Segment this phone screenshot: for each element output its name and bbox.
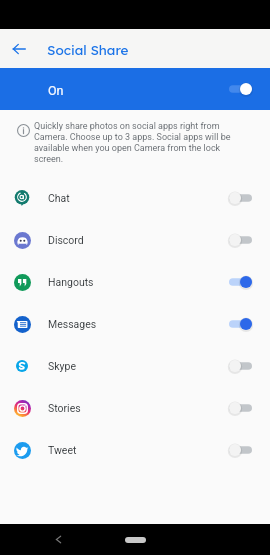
staticText: Hangouts bbox=[48, 276, 94, 288]
button[interactable]: Hangouts bbox=[0, 261, 270, 303]
button[interactable]: Messages bbox=[0, 303, 270, 345]
button[interactable]: Home bbox=[125, 537, 146, 543]
button[interactable]: Toggle bbox=[229, 82, 252, 96]
button[interactable]: On bbox=[0, 68, 270, 110]
staticText: Messages bbox=[48, 318, 97, 330]
button[interactable]: Stories bbox=[0, 387, 270, 429]
staticText: Quickly share photos on social apps righ… bbox=[34, 121, 232, 165]
staticText: Stories bbox=[48, 402, 81, 414]
button[interactable]: Toggle bbox=[229, 359, 252, 373]
button[interactable]: Skype bbox=[0, 345, 270, 387]
staticText: Skype bbox=[48, 360, 76, 372]
button[interactable]: Discord bbox=[0, 219, 270, 261]
staticText: Discord bbox=[48, 234, 84, 246]
button[interactable]: Toggle bbox=[229, 191, 252, 205]
staticText: Chat bbox=[48, 192, 70, 204]
staticText: On bbox=[48, 83, 64, 98]
button[interactable]: Toggle bbox=[229, 275, 252, 289]
button[interactable]: Chat bbox=[0, 177, 270, 219]
staticText: Tweet bbox=[48, 444, 77, 456]
button[interactable]: Toggle bbox=[229, 443, 252, 457]
button[interactable]: Toggle bbox=[229, 233, 252, 247]
button[interactable]: Tweet bbox=[0, 429, 270, 471]
button[interactable]: Back bbox=[43, 524, 73, 554]
button[interactable]: Toggle bbox=[229, 401, 252, 415]
staticText: Social Share bbox=[47, 41, 129, 58]
button[interactable]: Toggle bbox=[229, 317, 252, 331]
button[interactable]: Back bbox=[0, 30, 38, 68]
